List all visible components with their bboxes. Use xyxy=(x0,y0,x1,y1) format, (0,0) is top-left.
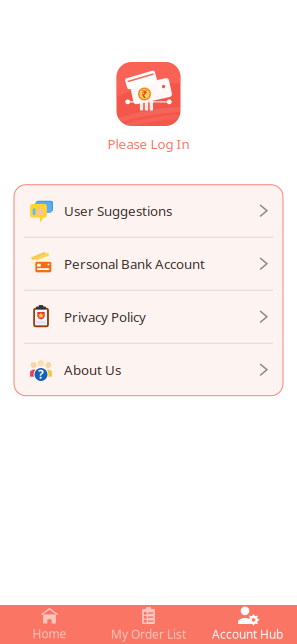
staticText: Please Log In xyxy=(107,135,189,153)
staticText: User Suggestions xyxy=(64,202,172,220)
button[interactable]: User Suggestions xyxy=(14,185,283,237)
button[interactable]: My Order List xyxy=(99,605,198,644)
button[interactable]: ? xyxy=(14,344,283,396)
button[interactable]: Personal Bank Account xyxy=(14,238,283,290)
staticText: Account Hub xyxy=(212,626,283,642)
staticText: ? xyxy=(38,366,44,382)
staticText: Personal Bank Account xyxy=(64,255,205,273)
staticText: Privacy Policy xyxy=(64,308,146,326)
staticText: Home xyxy=(32,625,66,641)
staticText: My Order List xyxy=(111,626,186,642)
staticText: ₹ xyxy=(142,87,148,101)
staticText: About Us xyxy=(64,361,121,379)
button[interactable]: Privacy Policy xyxy=(14,291,283,343)
button[interactable]: Account Hub xyxy=(198,605,297,644)
button[interactable]: Home xyxy=(0,605,99,644)
